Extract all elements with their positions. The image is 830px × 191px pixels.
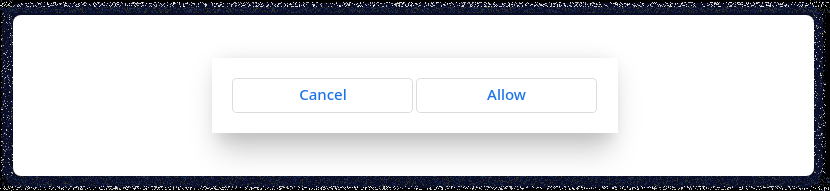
staticText: Allow (487, 84, 526, 104)
button[interactable]: Cancel (232, 78, 413, 113)
button[interactable]: Allow (416, 78, 597, 113)
staticText: Cancel (299, 84, 347, 104)
